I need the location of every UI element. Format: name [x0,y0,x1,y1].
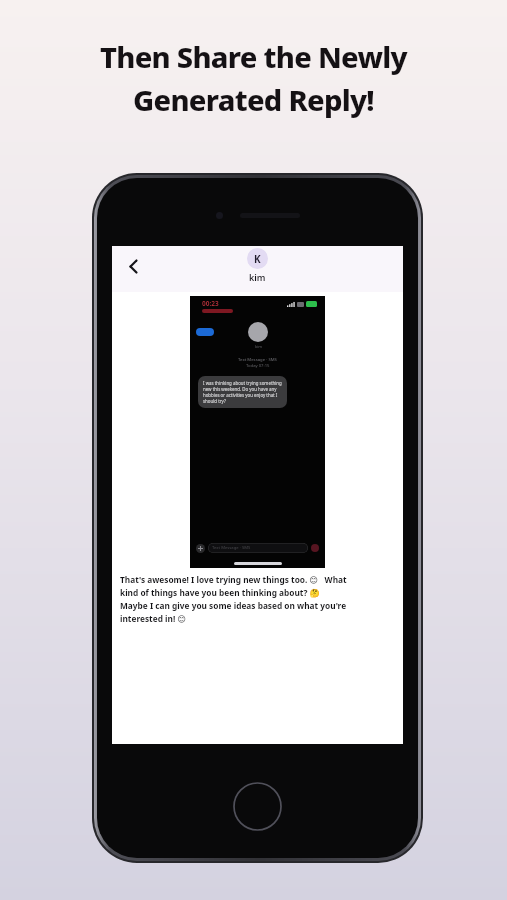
staticText: Then Share the Newly [100,37,407,76]
button[interactable]: Home [232,781,283,832]
staticText: should try? [203,398,226,404]
staticText: interested in! 😊 [120,613,187,624]
staticText: 00:23 [202,299,219,308]
staticText: K [254,252,261,266]
staticText: kim [249,271,266,283]
staticText: hobbies or activities you enjoy that I [203,392,278,398]
staticText: That's awesome! I love trying new things… [120,574,347,585]
staticText: Text Message · SMS [238,357,277,363]
staticText: I was thinking about trying something [203,380,282,386]
button[interactable]: 00:23 [190,296,325,568]
staticText: Generated Reply! [133,80,374,119]
staticText: Today 07:15 [246,363,270,369]
button[interactable]: K [247,248,268,283]
staticText: Maybe I can give you some ideas based on… [120,600,347,611]
staticText: kim [255,344,262,349]
staticText: kind of things have you been thinking ab… [120,587,320,598]
staticText: Text Message · SMS [212,545,251,551]
staticText: new this weekend. Do you have any [203,386,277,392]
button[interactable]: Back [118,251,148,281]
